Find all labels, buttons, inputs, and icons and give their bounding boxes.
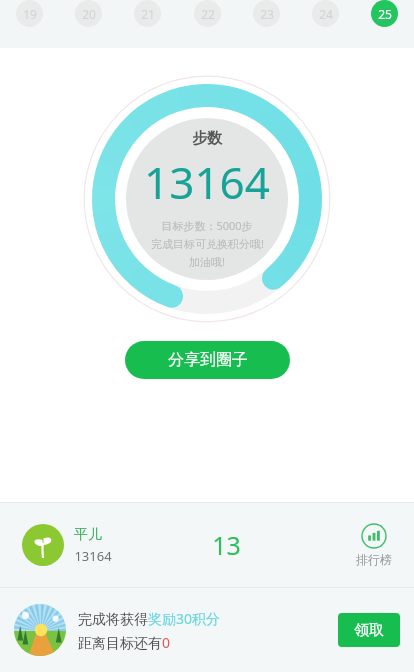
staticText: 23 xyxy=(260,6,274,22)
staticText: 25 xyxy=(378,6,392,22)
staticText: 分享到圈子 xyxy=(168,350,248,370)
staticText: 排行榜 xyxy=(356,552,392,567)
staticText: 20 xyxy=(82,6,96,22)
staticText: 步数 xyxy=(192,129,222,148)
staticText: 21 xyxy=(141,6,155,22)
staticText: 目标步数：5000步 xyxy=(161,218,253,233)
staticText: 13164 xyxy=(144,152,270,212)
staticText: 距离目标还有0 xyxy=(78,633,171,652)
staticText: 领取 xyxy=(354,621,384,640)
button[interactable]: 25 xyxy=(371,0,398,27)
button[interactable]: 20 xyxy=(75,0,102,27)
button[interactable]: 领取 xyxy=(338,613,400,647)
staticText: 22 xyxy=(201,6,215,22)
button[interactable]: 分享到圈子 xyxy=(125,341,290,379)
button[interactable]: 21 xyxy=(134,0,161,27)
button[interactable]: 排行榜 xyxy=(356,523,392,567)
staticText: 13164 xyxy=(74,547,112,565)
button[interactable]: 23 xyxy=(253,0,280,27)
staticText: 完成将获得奖励30积分 xyxy=(78,609,221,628)
button[interactable]: 24 xyxy=(312,0,339,27)
staticText: 24 xyxy=(319,6,333,22)
staticText: 13 xyxy=(212,528,241,562)
button[interactable]: 22 xyxy=(194,0,221,27)
staticText: 加油哦! xyxy=(189,254,225,269)
staticText: 19 xyxy=(23,6,37,22)
staticText: 完成目标可兑换积分哦! xyxy=(151,236,264,251)
button[interactable]: 19 xyxy=(16,0,43,27)
staticText: 平儿 xyxy=(74,526,102,544)
button[interactable]: 平儿 xyxy=(22,524,112,566)
